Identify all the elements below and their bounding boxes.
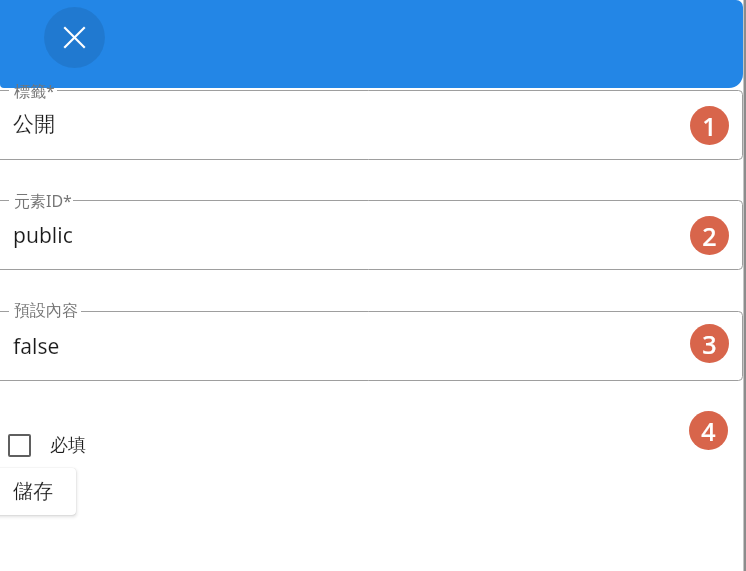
button[interactable] <box>0 312 742 381</box>
staticText: 儲存 <box>13 479 53 504</box>
staticText: false <box>13 332 60 361</box>
staticText: 4 <box>701 414 716 448</box>
button[interactable]: 儲存 <box>0 468 76 515</box>
button[interactable] <box>0 91 742 160</box>
button[interactable]: 必填 <box>8 434 86 457</box>
button[interactable]: 3 <box>690 324 729 363</box>
staticText: public <box>13 221 73 250</box>
button[interactable]: 1 <box>690 106 729 145</box>
staticText: 1 <box>702 109 717 143</box>
button[interactable] <box>0 201 742 270</box>
button[interactable]: Close <box>44 7 105 68</box>
staticText: 必填 <box>50 434 86 457</box>
staticText: 公開 <box>13 111 55 137</box>
staticText: 標籤* <box>14 80 55 102</box>
staticText: 預設內容 <box>14 301 78 321</box>
staticText: 2 <box>702 219 717 253</box>
staticText: 元素ID* <box>14 190 72 212</box>
button[interactable]: 2 <box>690 216 729 255</box>
staticText: 3 <box>702 327 717 361</box>
button[interactable]: 4 <box>689 411 728 450</box>
